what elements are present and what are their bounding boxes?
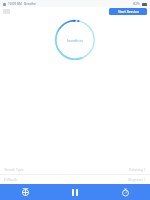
button[interactable]: Difficult [0,175,150,184]
staticText: Breath Type [4,167,24,172]
button[interactable]: Pause [50,184,100,200]
staticText: Beginner 1 [128,177,146,182]
button[interactable]: Breathing mode [0,184,50,200]
button[interactable]: Breath Type [0,165,150,174]
button[interactable]: Timer [100,184,150,200]
staticText: Start Session [118,9,139,14]
staticText: 10:09 AM [8,2,22,6]
staticText: Relaxing 1 [129,167,146,172]
staticText: Breathe [24,2,36,6]
button[interactable]: Start Session [109,8,147,15]
staticText: Difficult [4,177,17,182]
staticText: 82% [133,2,140,6]
staticText: breath in [67,38,83,43]
